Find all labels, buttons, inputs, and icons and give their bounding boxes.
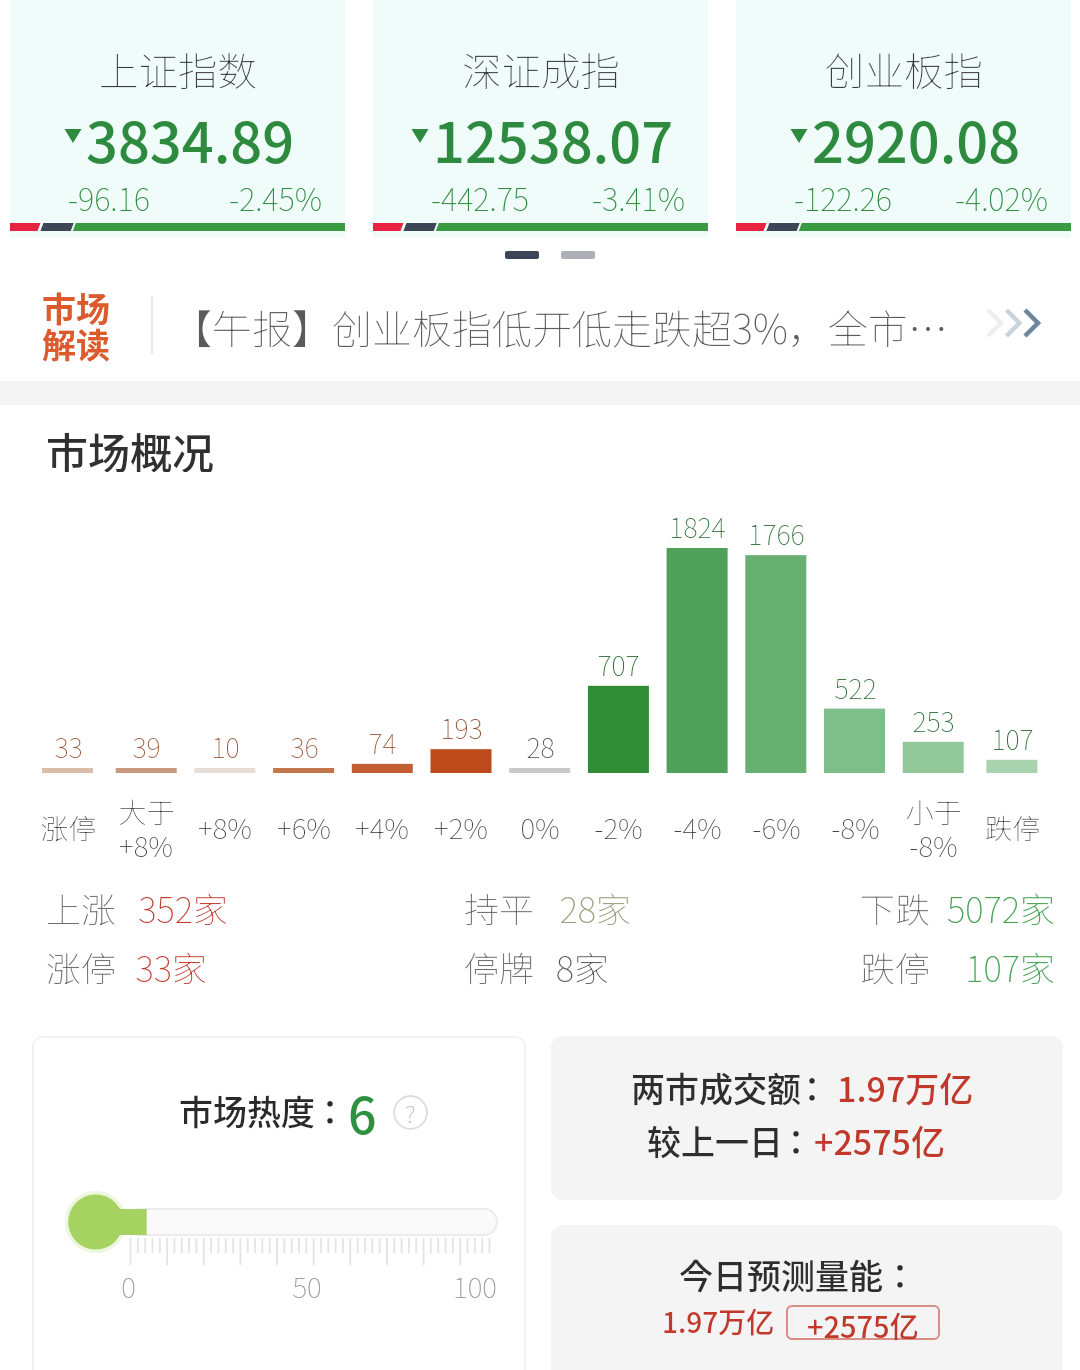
staticText: 持平 [464,882,535,933]
staticText: -122.26 [794,175,892,219]
staticText: 33 [54,727,83,766]
staticText: +8% [198,807,252,848]
staticText: -96.16 [68,175,150,219]
staticText: 市场 [42,283,110,332]
staticText: 193 [440,708,483,747]
staticText: 36 [290,727,319,766]
staticText: -4% [673,807,722,848]
staticText: ： [795,1063,829,1112]
staticText: 107家 [965,941,1055,992]
staticText: 涨停 [40,807,97,848]
staticText: 2920.08 [812,98,1021,179]
staticText: 522 [834,668,877,707]
staticText: 解读 [42,319,110,368]
staticText: 大于 [118,791,175,832]
staticText: 创业板指 [825,40,983,97]
staticText: 28家 [559,882,631,933]
staticText: 1.97万亿 [837,1063,974,1112]
staticText: 0% [520,807,560,848]
staticText: 28 [526,727,555,766]
staticText: 3834.89 [86,98,295,179]
staticText: +4% [355,807,409,848]
staticText: 33家 [135,941,207,992]
staticText: 50 [292,1266,322,1307]
staticText: 深证成指 [462,40,620,97]
button[interactable] [786,1305,940,1340]
other: More news [982,302,1042,344]
staticText: 1.97万亿 [662,1301,775,1342]
button[interactable]: 两市成交额 [551,1036,1063,1200]
staticText: 今日预测量能 [679,1250,883,1299]
staticText: -8% [831,807,880,848]
staticText: ： [779,1116,813,1165]
staticText: 1824 [669,507,726,546]
staticText: -2% [594,807,643,848]
staticText: 小于 [905,791,962,832]
staticText: 352家 [138,882,228,933]
staticText: 上证指数 [99,40,257,97]
staticText: +8% [119,825,173,866]
button[interactable]: 今日预测量能 [551,1225,1063,1370]
staticText: 107 [991,719,1034,758]
staticText: 上涨 [46,882,117,933]
staticText: 两市成交额 [631,1063,801,1112]
button[interactable]: 创业板指 [736,0,1071,238]
staticText: +2% [434,807,488,848]
staticText: +2575亿 [814,1116,945,1165]
staticText: 跌停 [984,807,1041,848]
staticText: 【午报】创业板指低开低走跌超3%，全市… [172,298,949,356]
staticText: 下跌 [860,882,931,933]
staticText: 跌停 [860,941,931,992]
staticText: 涨停 [46,941,117,992]
staticText: 10 [211,727,240,766]
staticText: 707 [597,645,640,684]
staticText: -442.75 [431,175,529,219]
staticText: -6% [752,807,801,848]
button[interactable]: 上证指数 [10,0,345,238]
staticText: +6% [277,807,331,848]
button[interactable]: Help [393,1095,428,1130]
staticText: +2575亿 [807,1304,919,1344]
staticText: 100 [453,1266,497,1307]
staticText: 39 [132,727,161,766]
button[interactable]: 市场 [0,272,1080,374]
staticText: ? [405,1095,416,1130]
staticText: 5072家 [947,882,1055,933]
staticText: ： [313,1086,347,1135]
staticText: 8家 [555,941,609,992]
staticText: 0 [121,1266,136,1307]
staticText: 12538.07 [433,98,674,179]
staticText: 6 [348,1076,377,1148]
staticText: 74 [368,723,397,762]
staticText: 市场概况 [46,420,215,472]
staticText: -3.41% [592,175,685,219]
staticText: 停牌 [464,941,535,992]
staticText: -8% [909,825,958,866]
staticText: 较上一日 [647,1116,783,1165]
staticText: 市场热度 [179,1086,315,1135]
staticText: -4.02% [955,175,1048,219]
button[interactable]: 深证成指 [373,0,708,238]
staticText: -2.45% [229,175,322,219]
button[interactable]: 市场热度 [32,1036,526,1370]
staticText: ： [883,1250,917,1299]
staticText: 253 [912,701,955,740]
staticText: 1766 [748,514,805,553]
